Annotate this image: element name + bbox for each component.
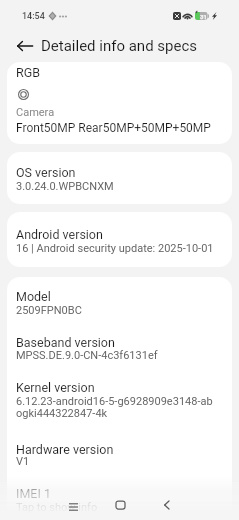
staticText: 3.0.24.0.WPBCNXM [16,180,114,193]
staticText: IMEI 1 [16,486,51,501]
staticText: Hardware version [16,442,114,457]
staticText: Front50MP Rear50MP+50MP+50MP [16,121,211,135]
staticText: 31 [200,13,207,20]
button[interactable]: Back [11,32,38,59]
staticText: 2509FPN0BC [16,304,82,317]
button[interactable]: Back [151,491,181,519]
staticText: Detailed info and specs [41,37,198,55]
staticText: 16 | Android security update: 2025-10-01 [16,242,214,255]
button[interactable]: Recent apps [58,493,88,520]
button[interactable] [7,62,232,144]
staticText: OS version [16,165,76,180]
staticText: 14:54 [22,11,45,22]
staticText: MPSS.DE.9.0-CN-4c3f6131ef [16,349,158,362]
button[interactable] [7,152,232,204]
staticText: RGB [16,65,41,80]
button[interactable]: Home [105,491,135,519]
staticText: 6.12.23-android16-5-g6928909e3148-ab [16,395,213,408]
staticText: V1 [16,455,30,468]
staticText: Tap to show info [16,501,98,514]
staticText: Kernel version [16,380,95,395]
staticText: Camera [16,106,55,119]
staticText: Baseband version [16,335,115,350]
staticText: ogki444322847-4k [16,407,108,420]
button[interactable] [7,277,232,520]
staticText: Model [16,289,51,304]
button[interactable] [7,212,232,267]
staticText: Android version [16,227,103,242]
